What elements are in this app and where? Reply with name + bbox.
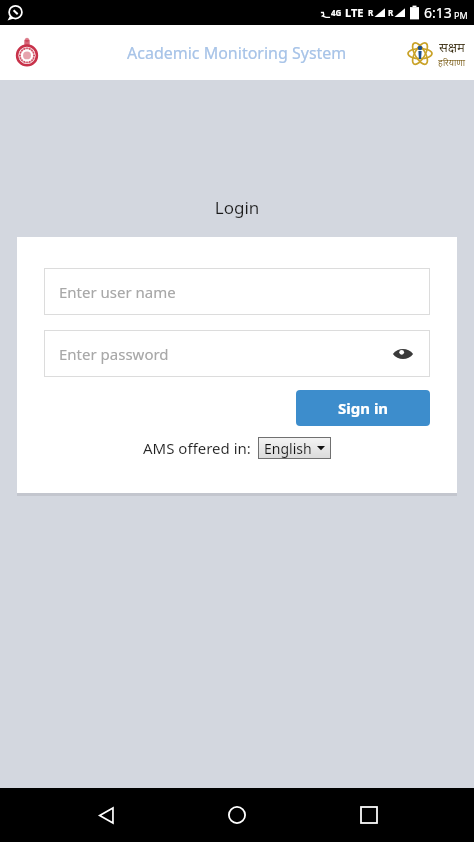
staticText: R [388, 7, 394, 18]
staticText: 4G [331, 7, 342, 18]
staticText: Enter user name [59, 282, 176, 302]
staticText: Login [0, 196, 474, 219]
button[interactable]: Home [211, 789, 263, 841]
staticText: Sign in [338, 398, 389, 418]
staticText: Enter password [59, 344, 169, 364]
staticText: LTE [345, 5, 364, 20]
button[interactable]: Back [80, 789, 132, 841]
staticText: R [368, 7, 374, 18]
staticText: PM [454, 9, 468, 21]
button[interactable]: Sign in [296, 390, 430, 426]
button[interactable]: English [264, 437, 325, 459]
staticText: Academic Monitoring System [127, 42, 347, 64]
staticText: English [264, 439, 312, 458]
button[interactable]: Recent apps [343, 789, 395, 841]
staticText: हरियाणा [438, 56, 466, 68]
staticText: 6:13 [424, 3, 452, 22]
button[interactable]: Show password [390, 341, 416, 367]
button[interactable]: Enter user name [44, 268, 430, 315]
staticText: AMS offered in: [143, 438, 251, 458]
staticText: सक्षम [439, 38, 465, 56]
button[interactable]: Enter password [44, 330, 430, 377]
